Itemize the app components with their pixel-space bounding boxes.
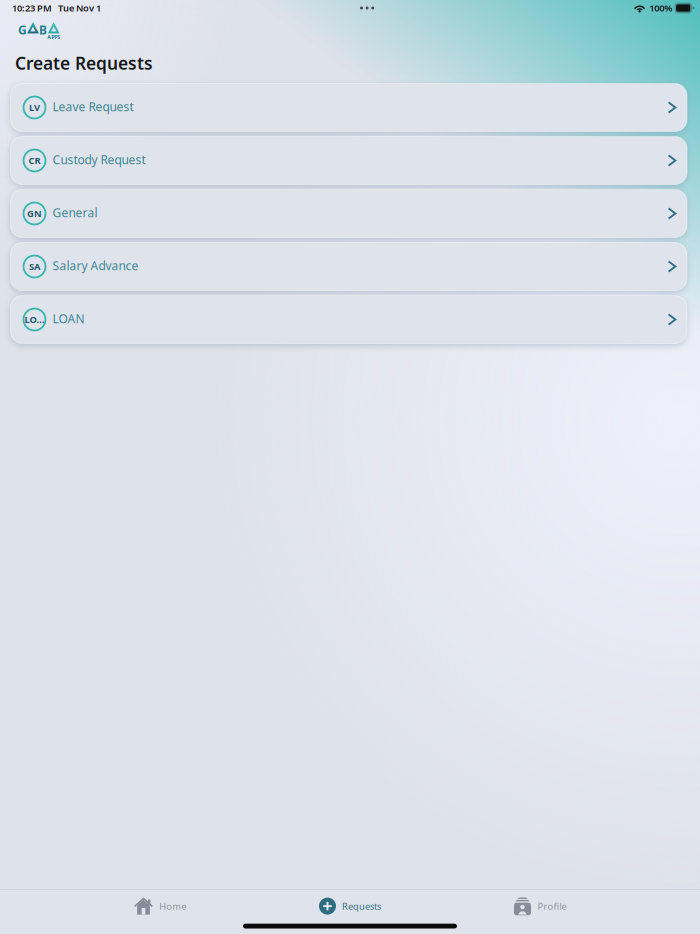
staticText: Leave Request	[52, 98, 133, 114]
button[interactable]: CR	[10, 136, 687, 184]
staticText: LO…	[24, 313, 44, 326]
button[interactable]: SA	[10, 242, 687, 290]
button[interactable]: Profile	[445, 893, 635, 919]
staticText: Tue Nov 1	[58, 2, 101, 14]
staticText: B	[39, 22, 47, 38]
button[interactable]: Requests	[255, 893, 445, 919]
staticText: SA	[29, 260, 40, 273]
staticText: 100%	[649, 2, 672, 14]
staticText: G	[18, 22, 27, 38]
staticText: Requests	[342, 900, 381, 912]
staticText: LV	[29, 101, 40, 114]
staticText: GN	[27, 207, 42, 220]
staticText: Salary Advance	[52, 257, 138, 273]
button[interactable]: GN	[10, 189, 687, 237]
button[interactable]: Home	[65, 893, 255, 919]
staticText: General	[52, 204, 97, 220]
staticText: LOAN	[52, 310, 84, 326]
staticText: APPS	[47, 33, 60, 40]
staticText: Custody Request	[52, 151, 145, 167]
staticText: Profile	[537, 900, 566, 912]
button[interactable]: LV	[10, 83, 687, 131]
staticText: 10:23 PM	[12, 2, 52, 14]
staticText: Home	[159, 900, 186, 912]
staticText: CR	[28, 154, 40, 167]
button[interactable]: LO…	[10, 295, 687, 343]
staticText: Create Requests	[15, 51, 153, 74]
